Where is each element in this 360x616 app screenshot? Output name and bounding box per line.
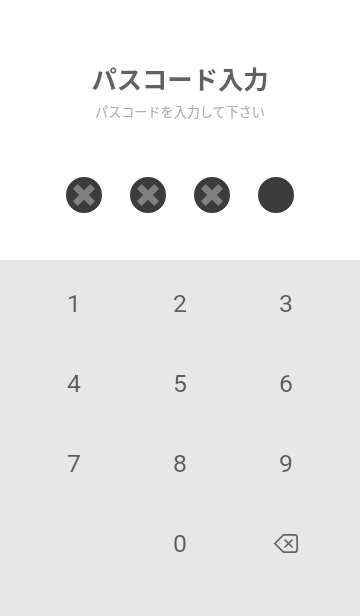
button[interactable]: 8 xyxy=(127,423,233,503)
button[interactable]: Delete xyxy=(233,503,339,583)
staticText: パスコード入力 xyxy=(0,60,360,97)
staticText: 4 xyxy=(67,369,81,398)
button[interactable]: 1 xyxy=(21,263,127,343)
staticText: 2 xyxy=(173,289,187,318)
button[interactable]: 6 xyxy=(233,343,339,423)
button[interactable]: 5 xyxy=(127,343,233,423)
button[interactable]: 4 xyxy=(21,343,127,423)
staticText: 1 xyxy=(67,289,81,318)
button[interactable]: 9 xyxy=(233,423,339,503)
button[interactable]: 7 xyxy=(21,423,127,503)
button[interactable]: 0 xyxy=(127,503,233,583)
staticText: 5 xyxy=(173,369,187,398)
staticText: 8 xyxy=(173,449,187,478)
staticText: 0 xyxy=(173,529,187,558)
staticText: 3 xyxy=(279,289,293,318)
button[interactable]: 3 xyxy=(233,263,339,343)
staticText: パスコードを入力して下さい xyxy=(0,102,360,121)
staticText: 6 xyxy=(279,369,293,398)
staticText: 7 xyxy=(67,449,81,478)
button[interactable]: 2 xyxy=(127,263,233,343)
staticText: 9 xyxy=(279,449,293,478)
